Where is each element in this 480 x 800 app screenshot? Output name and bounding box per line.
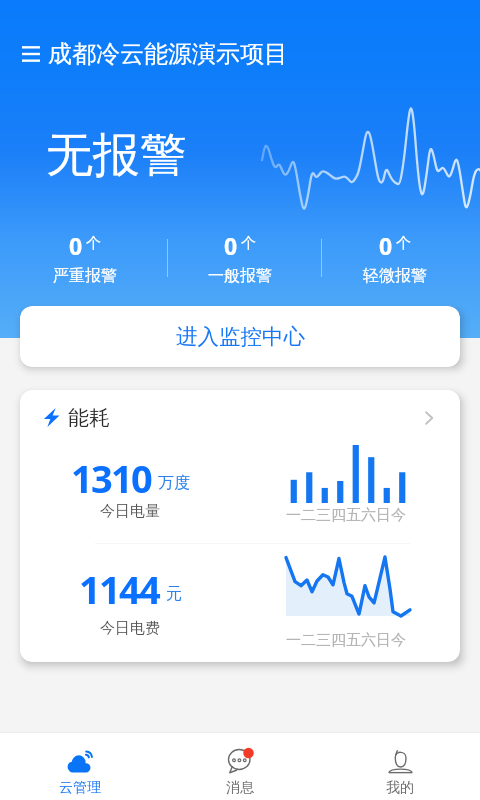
- staticText: 一般报警: [208, 266, 272, 286]
- staticText: 个: [241, 234, 256, 253]
- staticText: 元: [166, 584, 182, 604]
- staticText: 万度: [158, 473, 190, 493]
- staticText: 0: [379, 230, 393, 261]
- staticText: 云管理: [59, 779, 101, 797]
- button[interactable]: Menu: [14, 37, 48, 71]
- staticText: 轻微报警: [363, 266, 427, 286]
- button[interactable]: 云管理: [0, 733, 160, 797]
- button[interactable]: 1310: [20, 445, 460, 556]
- staticText: 一二三四五六日今: [286, 631, 406, 650]
- button[interactable]: 能耗: [20, 390, 460, 445]
- staticText: 今日电费: [100, 619, 160, 638]
- staticText: 消息: [226, 779, 254, 797]
- button[interactable]: 进入监控中心: [20, 306, 460, 367]
- staticText: 我的: [386, 779, 414, 797]
- staticText: 1144: [79, 563, 160, 615]
- button[interactable]: 1144: [20, 556, 460, 662]
- staticText: 无报警: [46, 126, 187, 185]
- staticText: 个: [396, 234, 411, 253]
- button[interactable]: 我的: [320, 733, 480, 797]
- staticText: 今日电量: [100, 502, 160, 521]
- staticText: 个: [86, 234, 101, 253]
- staticText: 一二三四五六日今: [286, 506, 406, 525]
- button[interactable]: 0: [335, 230, 455, 286]
- button[interactable]: 消息: [160, 733, 320, 797]
- staticText: 0: [224, 230, 238, 261]
- staticText: 1310: [71, 452, 152, 504]
- staticText: 进入监控中心: [176, 323, 305, 350]
- button[interactable]: 0: [180, 230, 300, 286]
- button[interactable]: 0: [25, 230, 145, 286]
- staticText: 严重报警: [53, 266, 117, 286]
- staticText: 能耗: [68, 405, 110, 431]
- staticText: 成都冷云能源演示项目: [48, 39, 288, 69]
- staticText: 0: [69, 230, 83, 261]
